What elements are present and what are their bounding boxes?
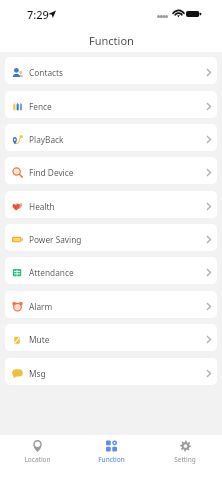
- button[interactable]: PlayBack: [5, 124, 217, 151]
- button[interactable]: Mute: [5, 324, 217, 351]
- staticText: PlayBack: [29, 134, 64, 145]
- button[interactable]: Attendance: [5, 257, 217, 284]
- staticText: Fence: [29, 101, 52, 112]
- button[interactable]: Fence: [5, 91, 217, 118]
- button[interactable]: Health: [5, 191, 217, 218]
- button[interactable]: Find Device: [5, 157, 217, 184]
- button[interactable]: Setting: [148, 435, 222, 480]
- staticText: Find Device: [29, 167, 74, 178]
- staticText: Function: [89, 33, 134, 48]
- staticText: Power Saving: [29, 234, 82, 245]
- button[interactable]: Power Saving: [5, 224, 217, 251]
- staticText: Setting: [174, 455, 196, 464]
- button[interactable]: Contacts: [5, 57, 217, 84]
- staticText: Location: [24, 455, 51, 464]
- button[interactable]: Msg: [5, 358, 217, 385]
- button[interactable]: Alarm: [5, 291, 217, 318]
- button[interactable]: Function: [74, 435, 148, 480]
- staticText: Attendance: [29, 267, 74, 278]
- staticText: Alarm: [29, 301, 53, 312]
- staticText: Function: [98, 455, 125, 464]
- staticText: Health: [29, 201, 55, 212]
- staticText: Msg: [29, 368, 46, 379]
- staticText: Mute: [29, 334, 50, 345]
- staticText: 7:29: [27, 7, 49, 22]
- staticText: Contacts: [29, 67, 63, 78]
- button[interactable]: Location: [0, 435, 74, 480]
